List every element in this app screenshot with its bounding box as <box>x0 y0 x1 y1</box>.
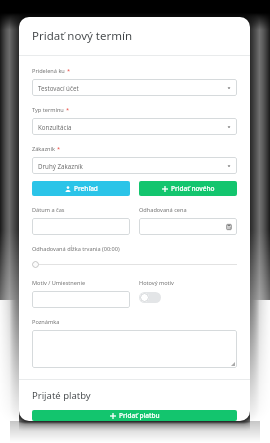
button[interactable]: Odhadovaná dĺžka trvania slider <box>32 260 237 268</box>
staticText: Odhadovaná cena <box>139 206 187 214</box>
staticText: Druhý Zakazník <box>38 162 83 170</box>
staticText: Dátum a čas <box>32 206 65 214</box>
staticText: Typ termínu <box>32 106 64 114</box>
staticText: Pridať platbu <box>119 411 160 420</box>
staticText: Pridať nový termín <box>32 28 133 44</box>
staticText: * <box>57 145 61 153</box>
staticText: Motív / Umiestnenie <box>32 279 86 287</box>
staticText: Prijaté platby <box>32 389 91 402</box>
staticText: Zákazník <box>32 145 55 153</box>
button[interactable]: Pridať platbu <box>32 410 237 421</box>
staticText: * <box>66 106 70 114</box>
button[interactable]: Konzultácia <box>32 118 237 135</box>
staticText: Prehľad <box>74 184 98 193</box>
button[interactable] <box>139 218 237 235</box>
staticText: Testovací účet <box>38 84 79 92</box>
button[interactable] <box>32 291 130 308</box>
button[interactable]: Prehľad <box>32 181 130 196</box>
button[interactable] <box>32 330 237 368</box>
button[interactable]: Druhý Zakazník <box>32 157 237 174</box>
staticText: Odhadovaná dĺžka trvania (00:00) <box>32 245 120 253</box>
staticText: Poznámka <box>32 318 60 326</box>
staticText: Hotový motív <box>139 279 174 287</box>
staticText: Konzultácia <box>38 123 72 131</box>
staticText: Pridelená ku <box>32 67 65 75</box>
button[interactable]: Testovací účet <box>32 79 237 96</box>
staticText: * <box>67 67 71 75</box>
staticText: Pridať nového <box>171 184 215 193</box>
button[interactable] <box>32 218 130 235</box>
button[interactable]: Hotový motív prepínač <box>139 292 161 303</box>
button[interactable]: Pridať nového <box>139 181 237 196</box>
